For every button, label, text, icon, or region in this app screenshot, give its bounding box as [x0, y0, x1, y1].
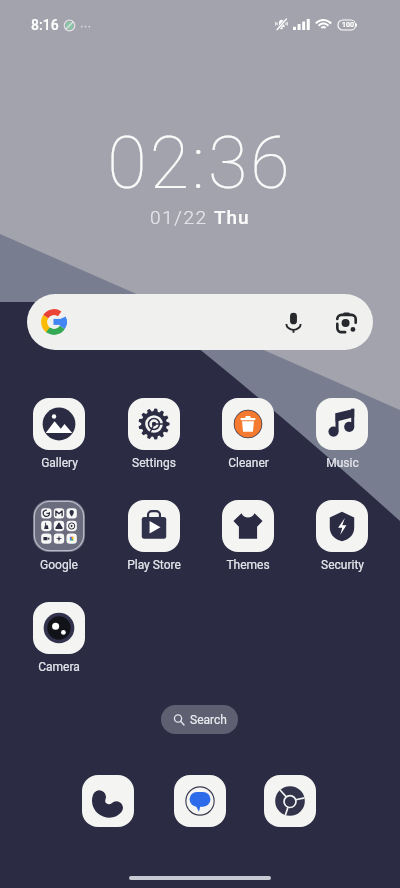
staticText: Google: [40, 558, 78, 572]
button[interactable]: Google: [17, 500, 101, 572]
button[interactable]: Gallery: [17, 398, 101, 470]
button[interactable]: Security: [300, 500, 384, 572]
staticText: 02:36: [107, 121, 293, 205]
staticText: Music: [326, 456, 359, 470]
button[interactable]: Voice search: [27, 294, 373, 350]
staticText: Search: [190, 713, 227, 727]
other: Google Lens: [335, 311, 358, 334]
staticText: 8:16: [31, 17, 59, 33]
staticText: Thu: [214, 206, 250, 228]
button[interactable]: Play Store: [112, 500, 196, 572]
button[interactable]: Search: [161, 705, 238, 734]
staticText: Cleaner: [228, 456, 269, 470]
staticText: Play Store: [127, 558, 181, 572]
staticText: Settings: [132, 456, 176, 470]
button[interactable]: Chrome: [264, 775, 316, 827]
other: Voice search: [282, 311, 305, 334]
staticText: Camera: [38, 660, 80, 674]
button[interactable]: Camera: [17, 602, 101, 674]
staticText: 01/22: [150, 206, 214, 228]
button[interactable]: Themes: [206, 500, 290, 572]
button[interactable]: Music: [300, 398, 384, 470]
button[interactable]: Settings: [112, 398, 196, 470]
staticText: Themes: [226, 558, 270, 572]
button[interactable]: Messages: [174, 775, 226, 827]
staticText: Gallery: [41, 456, 78, 470]
staticText: Security: [321, 558, 364, 572]
button[interactable]: Cleaner: [206, 398, 290, 470]
button[interactable]: Phone: [82, 775, 134, 827]
staticText: 100: [342, 21, 354, 29]
